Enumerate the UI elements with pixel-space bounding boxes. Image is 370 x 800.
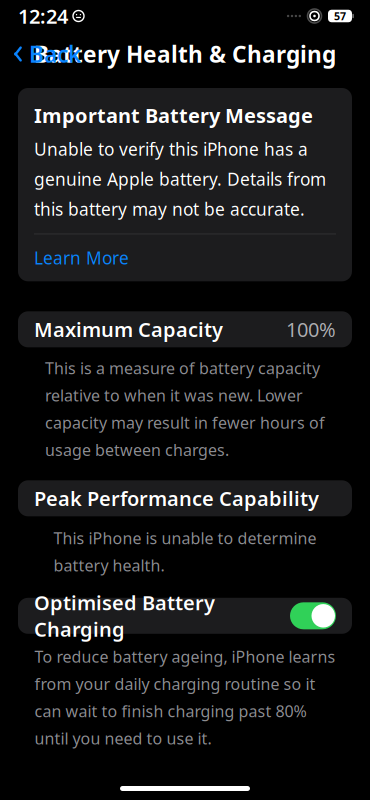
staticText: Back [29, 39, 81, 69]
staticText: This iPhone is unable to determine batte… [53, 527, 316, 576]
staticText: 57 [334, 9, 346, 23]
staticText: Optimised Battery Charging [34, 589, 215, 642]
staticText: 12:24 [18, 3, 68, 29]
staticText: To reduce battery ageing, iPhone learns … [34, 646, 335, 749]
button[interactable]: Back [0, 33, 89, 75]
button[interactable]: Learn More [34, 234, 336, 281]
staticText: Important Battery Message [34, 102, 313, 129]
button[interactable]: Peak Performance Capability [0, 480, 370, 516]
button[interactable]: Optimised Battery Charging [0, 598, 370, 634]
staticText: Learn More [34, 246, 129, 269]
staticText: 100% [286, 316, 336, 343]
staticText: Unable to verify this iPhone has a genui… [34, 138, 326, 221]
staticText: Maximum Capacity [34, 316, 223, 343]
staticText: Battery Health & Charging [34, 39, 336, 69]
staticText: This is a measure of battery capacity re… [45, 357, 325, 460]
staticText: Peak Performance Capability [34, 485, 319, 512]
